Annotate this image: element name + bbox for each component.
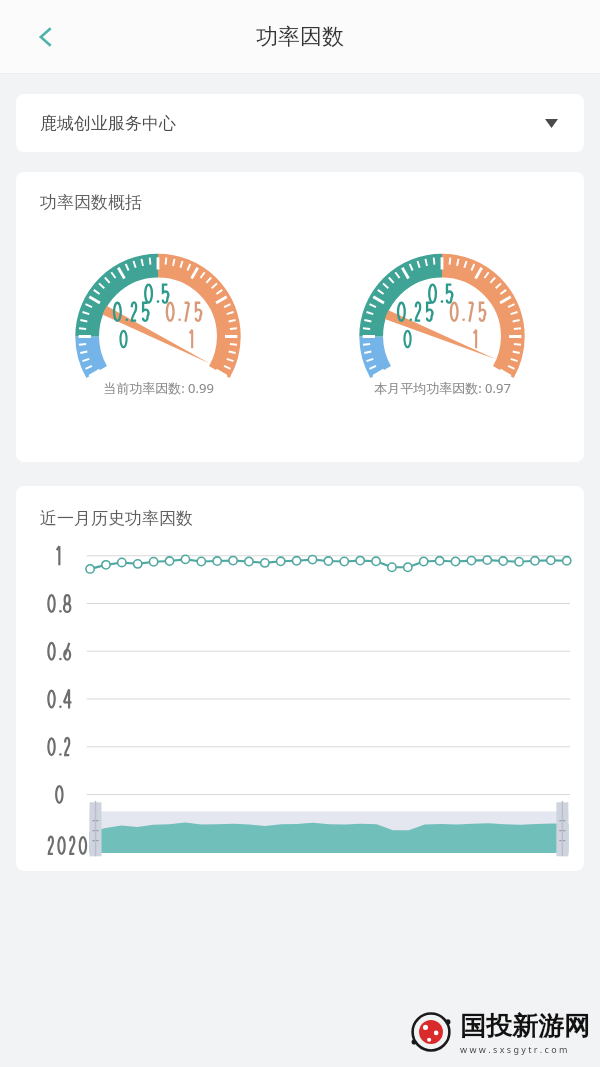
staticText: 鹿城创业服务中心 <box>40 113 176 134</box>
staticText: w w w . s x s g y t r . c o m <box>460 1043 568 1055</box>
button[interactable]: Back <box>22 13 70 61</box>
staticText: 功率因数 <box>256 23 344 51</box>
staticText: 当前功率因数: 0.99 <box>103 379 214 397</box>
staticText: 本月平均功率因数: 0.97 <box>374 379 511 397</box>
staticText: 近一月历史功率因数 <box>40 508 193 529</box>
staticText: 功率因数概括 <box>40 192 142 213</box>
staticText: 国投新游网 <box>460 1010 590 1043</box>
button[interactable]: 鹿城创业服务中心 <box>16 94 584 152</box>
